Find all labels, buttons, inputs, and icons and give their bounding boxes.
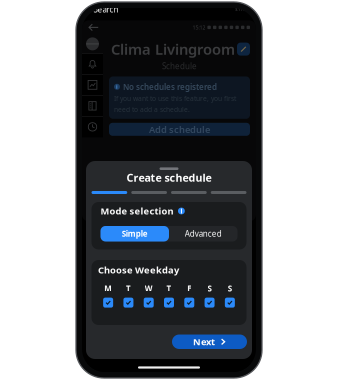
button[interactable]: W xyxy=(139,283,159,308)
button[interactable]: Advanced xyxy=(169,226,237,241)
staticText: need to add a schedule. xyxy=(114,105,190,114)
button[interactable]: F xyxy=(179,283,199,308)
staticText: Create schedule xyxy=(126,170,211,185)
staticText: M xyxy=(104,283,112,294)
staticText: S xyxy=(228,283,232,294)
button[interactable]: S xyxy=(199,283,220,308)
staticText: i xyxy=(116,83,118,90)
staticText: Add schedule xyxy=(149,123,210,135)
button[interactable]: T xyxy=(159,283,179,308)
staticText: F xyxy=(187,283,191,294)
staticText: T xyxy=(126,283,131,294)
staticText: 15:12 xyxy=(192,24,205,31)
staticText: Search xyxy=(93,4,118,15)
staticText: Mode selection xyxy=(100,205,173,217)
staticText: i xyxy=(180,207,182,215)
button[interactable]: S xyxy=(220,283,240,308)
staticText: Simple xyxy=(122,228,148,239)
staticText: 15:12 xyxy=(96,0,123,7)
staticText: Choose Weekday xyxy=(98,264,179,276)
button[interactable]: Next xyxy=(172,334,247,349)
staticText: Advanced xyxy=(185,228,222,239)
staticText: W xyxy=(145,283,153,294)
staticText: Clima Livingroom xyxy=(111,39,235,59)
button[interactable]: Simple xyxy=(100,226,169,241)
staticText: No schedules registered xyxy=(123,81,217,92)
staticText: 3.111.16 xyxy=(235,7,249,12)
staticText: If you want to use this feature, you fir… xyxy=(114,94,236,103)
staticText: Schedule xyxy=(162,61,197,71)
staticText: S xyxy=(208,283,212,294)
staticText: Next xyxy=(193,336,215,348)
button[interactable]: M xyxy=(98,283,118,308)
staticText: T xyxy=(166,283,171,294)
button[interactable]: T xyxy=(118,283,139,308)
